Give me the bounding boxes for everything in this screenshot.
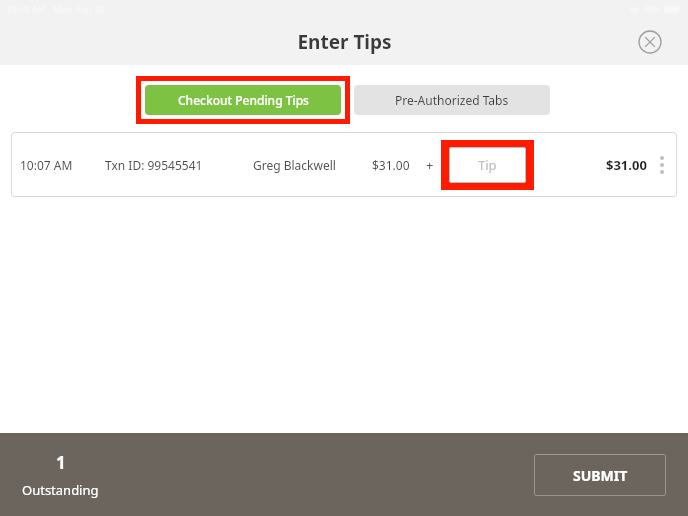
button[interactable]: Checkout Pending Tips — [145, 85, 341, 115]
staticText: Outstanding — [22, 481, 99, 499]
staticText: Tip — [478, 156, 497, 174]
staticText: + — [426, 156, 434, 174]
button[interactable]: Tip — [449, 147, 526, 183]
staticText: Enter Tips — [297, 29, 392, 55]
staticText: Txn ID: 99545541 — [105, 157, 203, 173]
button[interactable]: 10:07 AM — [11, 132, 677, 197]
staticText: 1 — [56, 451, 66, 474]
staticText: $31.00 — [372, 157, 410, 173]
button[interactable]: SUBMIT — [534, 454, 666, 496]
staticText: $31.00 — [606, 156, 647, 174]
button[interactable]: More options — [647, 132, 677, 197]
button[interactable]: Close — [638, 30, 662, 54]
staticText: SUBMIT — [573, 466, 628, 485]
staticText: Greg Blackwell — [253, 157, 336, 173]
staticText: Pre-Authorized Tabs — [395, 92, 509, 108]
button[interactable]: Pre-Authorized Tabs — [354, 85, 550, 115]
staticText: 10:07 AM — [20, 157, 73, 173]
staticText: Checkout Pending Tips — [178, 92, 309, 108]
